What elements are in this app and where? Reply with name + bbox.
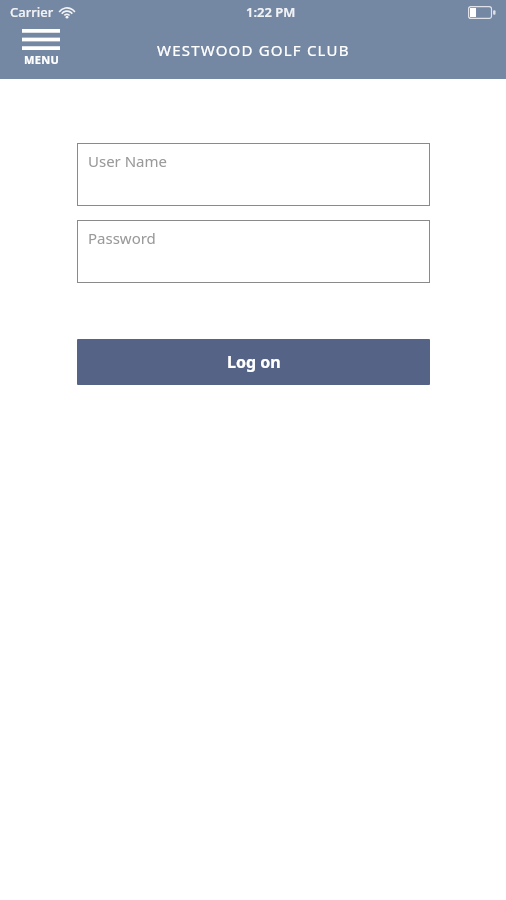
button[interactable]: Password	[77, 220, 430, 283]
staticText: Password	[88, 228, 156, 248]
staticText: Carrier	[10, 3, 54, 21]
staticText: User Name	[88, 151, 168, 171]
button[interactable]: Log on	[77, 339, 430, 385]
button[interactable]: User Name	[77, 143, 430, 206]
button[interactable]: Menu	[20, 28, 62, 68]
staticText: 1:22 PM	[246, 3, 296, 21]
staticText: MENU	[24, 52, 59, 67]
staticText: WESTWOOD GOLF CLUB	[157, 40, 350, 60]
staticText: Log on	[227, 351, 281, 373]
